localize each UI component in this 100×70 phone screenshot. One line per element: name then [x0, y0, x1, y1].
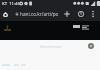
button[interactable]: Site menu	[82, 25, 89, 30]
button[interactable]: Switch tabs	[75, 7, 86, 21]
button[interactable]: More options	[88, 7, 98, 21]
staticText: hani.co.kr/arti/politics/bluehouse	[20, 11, 58, 17]
button[interactable]: Incognito	[0, 7, 11, 21]
staticText: 1	[80, 12, 82, 16]
button[interactable]: New tab	[61, 7, 72, 21]
button[interactable]: Close ad	[88, 43, 94, 49]
staticText: Advertisement	[40, 45, 62, 49]
staticText: KT 11:46	[2, 1, 20, 7]
